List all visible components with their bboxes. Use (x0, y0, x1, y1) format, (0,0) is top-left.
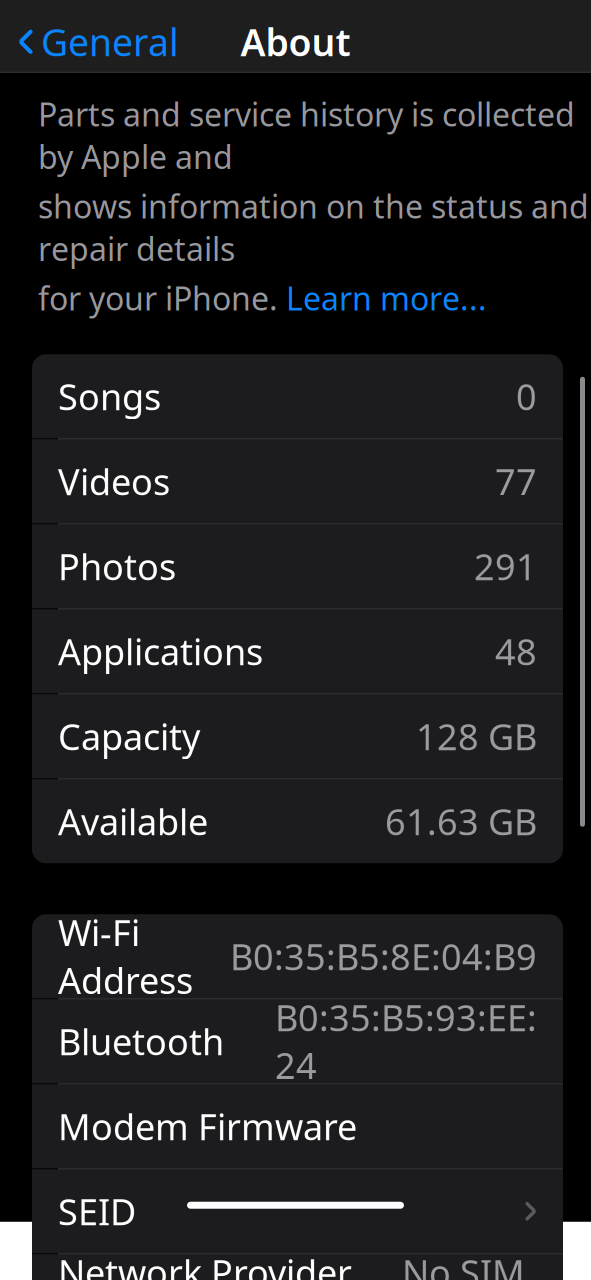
staticText: 77 (495, 457, 537, 505)
staticText: 61.63 GB (385, 797, 537, 845)
staticText: No SIM restric... (402, 1248, 537, 1280)
button[interactable]: SEID (32, 1169, 563, 1253)
staticText: Parts and service history is collected b… (38, 93, 575, 178)
staticText: SEID (58, 1187, 136, 1235)
staticText: Songs (58, 372, 161, 420)
staticText: Modem Firmware (58, 1102, 357, 1150)
button[interactable]: Learn more... (286, 277, 487, 319)
staticText: B0:35:B5:93:EE:24 (275, 993, 537, 1089)
button[interactable]: General (0, 9, 179, 75)
button[interactable]: Capacity (32, 694, 563, 778)
staticText: General (41, 17, 179, 67)
staticText: 291 (474, 542, 537, 590)
staticText: Wi-Fi Address (58, 908, 193, 1004)
staticText: Learn more... (286, 277, 487, 319)
staticText: Bluetooth (58, 1017, 224, 1065)
staticText: 128 GB (416, 712, 537, 760)
staticText: Applications (58, 627, 263, 675)
button[interactable]: Available (32, 779, 563, 863)
staticText: 0 (516, 372, 537, 420)
button[interactable]: Applications (32, 609, 563, 693)
button[interactable]: Photos (32, 524, 563, 608)
staticText: Available (58, 797, 208, 845)
staticText: 48 (495, 627, 537, 675)
staticText: About (240, 17, 350, 67)
button[interactable]: Bluetooth (32, 999, 563, 1083)
staticText: Photos (58, 542, 176, 590)
button[interactable]: Wi-Fi Address (32, 914, 563, 998)
staticText: Capacity (58, 712, 200, 760)
button[interactable]: Modem Firmware (32, 1084, 563, 1168)
button[interactable]: Videos (32, 439, 563, 523)
staticText: B0:35:B5:8E:04:B9 (230, 932, 537, 980)
button[interactable]: Network Provider Lock (32, 1254, 563, 1280)
staticText: Network Provider Lock (58, 1248, 352, 1280)
button[interactable]: Songs (32, 354, 563, 438)
staticText: shows information on the status and repa… (38, 185, 589, 270)
staticText: Videos (58, 457, 170, 505)
staticText: for your iPhone. (38, 277, 286, 319)
